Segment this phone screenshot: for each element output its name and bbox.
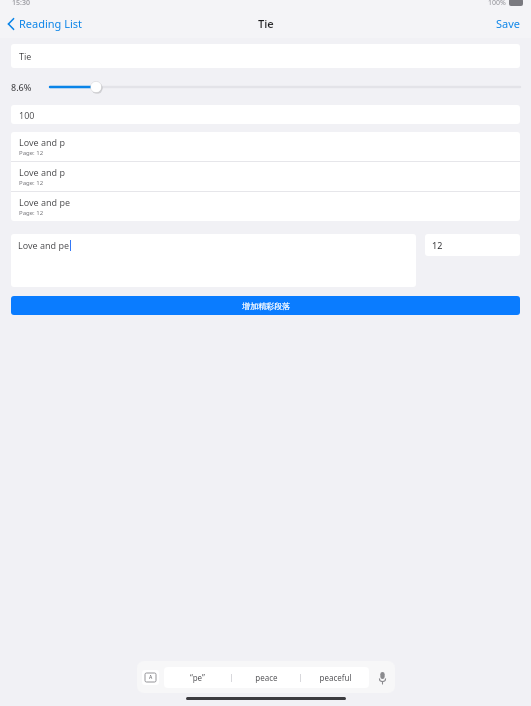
button[interactable]: 12 <box>425 234 520 256</box>
staticText: Page: 12 <box>19 209 44 217</box>
button[interactable]: 100 <box>11 105 520 124</box>
button[interactable]: Voice input <box>374 670 390 686</box>
button[interactable]: Reading List <box>0 12 91 35</box>
button[interactable]: Love and p <box>11 132 520 161</box>
staticText: 增加精彩段落 <box>242 301 290 311</box>
staticText: Love and p <box>19 166 65 178</box>
staticText: Tie <box>19 50 32 62</box>
staticText: peace <box>255 672 278 683</box>
button[interactable]: Tie <box>11 44 520 68</box>
staticText: Page: 12 <box>19 179 44 187</box>
staticText: Page: 12 <box>19 149 44 157</box>
staticText: 12 <box>432 239 443 251</box>
staticText: 15:30 <box>12 0 30 6</box>
staticText: 100 <box>19 109 35 121</box>
staticText: Reading List <box>19 16 83 31</box>
staticText: Love and p <box>19 136 65 148</box>
staticText: 100% <box>488 0 506 6</box>
button[interactable]: Save <box>486 10 531 37</box>
button[interactable]: Switch keyboard language <box>142 670 159 685</box>
button[interactable]: Love and pe <box>11 192 520 221</box>
staticText: Save <box>496 16 521 31</box>
button[interactable]: Love and pe <box>11 234 416 287</box>
staticText: Love and pe <box>18 239 70 251</box>
button[interactable]: peaceful <box>301 667 369 688</box>
button[interactable]: Reading progress slider <box>50 77 520 97</box>
staticText: A <box>149 674 153 681</box>
staticText: 8.6% <box>11 81 32 93</box>
button[interactable]: “pe” <box>164 667 231 688</box>
button[interactable]: Love and p <box>11 162 520 191</box>
button[interactable]: peace <box>232 667 300 688</box>
staticText: Tie <box>258 16 274 31</box>
staticText: “pe” <box>190 672 205 683</box>
button[interactable]: 增加精彩段落 <box>11 296 520 315</box>
staticText: peaceful <box>319 672 352 683</box>
staticText: Love and pe <box>19 196 71 208</box>
